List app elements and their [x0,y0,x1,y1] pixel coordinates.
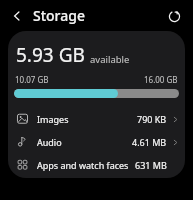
staticText: 16.00 GB [144,74,178,85]
staticText: Storage [33,6,85,25]
staticText: available [90,53,130,66]
staticText: 4.61 MB [132,136,167,148]
staticText: Images [37,113,69,125]
staticText: 10.07 GB [15,74,49,85]
staticText: 5.93 GB [16,42,85,68]
staticText: 790 KB [137,113,167,125]
button[interactable]: Audio [8,130,185,153]
button[interactable]: Apps and watch faces [8,153,185,176]
staticText: Audio [37,136,62,148]
button[interactable]: Refresh [161,3,187,29]
button[interactable]: Back [4,3,30,29]
button[interactable]: Images [8,107,185,130]
staticText: Apps and watch faces [37,159,129,171]
staticText: 631 MB [135,159,167,171]
